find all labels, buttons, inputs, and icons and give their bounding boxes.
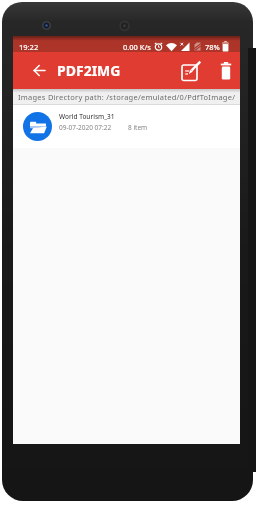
- button[interactable]: [220, 61, 232, 81]
- staticText: World Tourism_31: [59, 112, 115, 121]
- staticText: 78%: [205, 42, 220, 52]
- staticText: Images Directory path: /storage/emulated…: [18, 92, 236, 102]
- button[interactable]: [181, 59, 202, 83]
- button[interactable]: World Tourism_31: [13, 105, 240, 148]
- button[interactable]: [33, 64, 46, 77]
- staticText: PDF2IMG: [57, 61, 121, 80]
- staticText: 09-07-2020 07:22: [59, 123, 112, 132]
- staticText: 19:22: [19, 42, 39, 52]
- staticText: 8 item: [128, 123, 148, 132]
- staticText: 0.00 K/s: [123, 42, 151, 52]
